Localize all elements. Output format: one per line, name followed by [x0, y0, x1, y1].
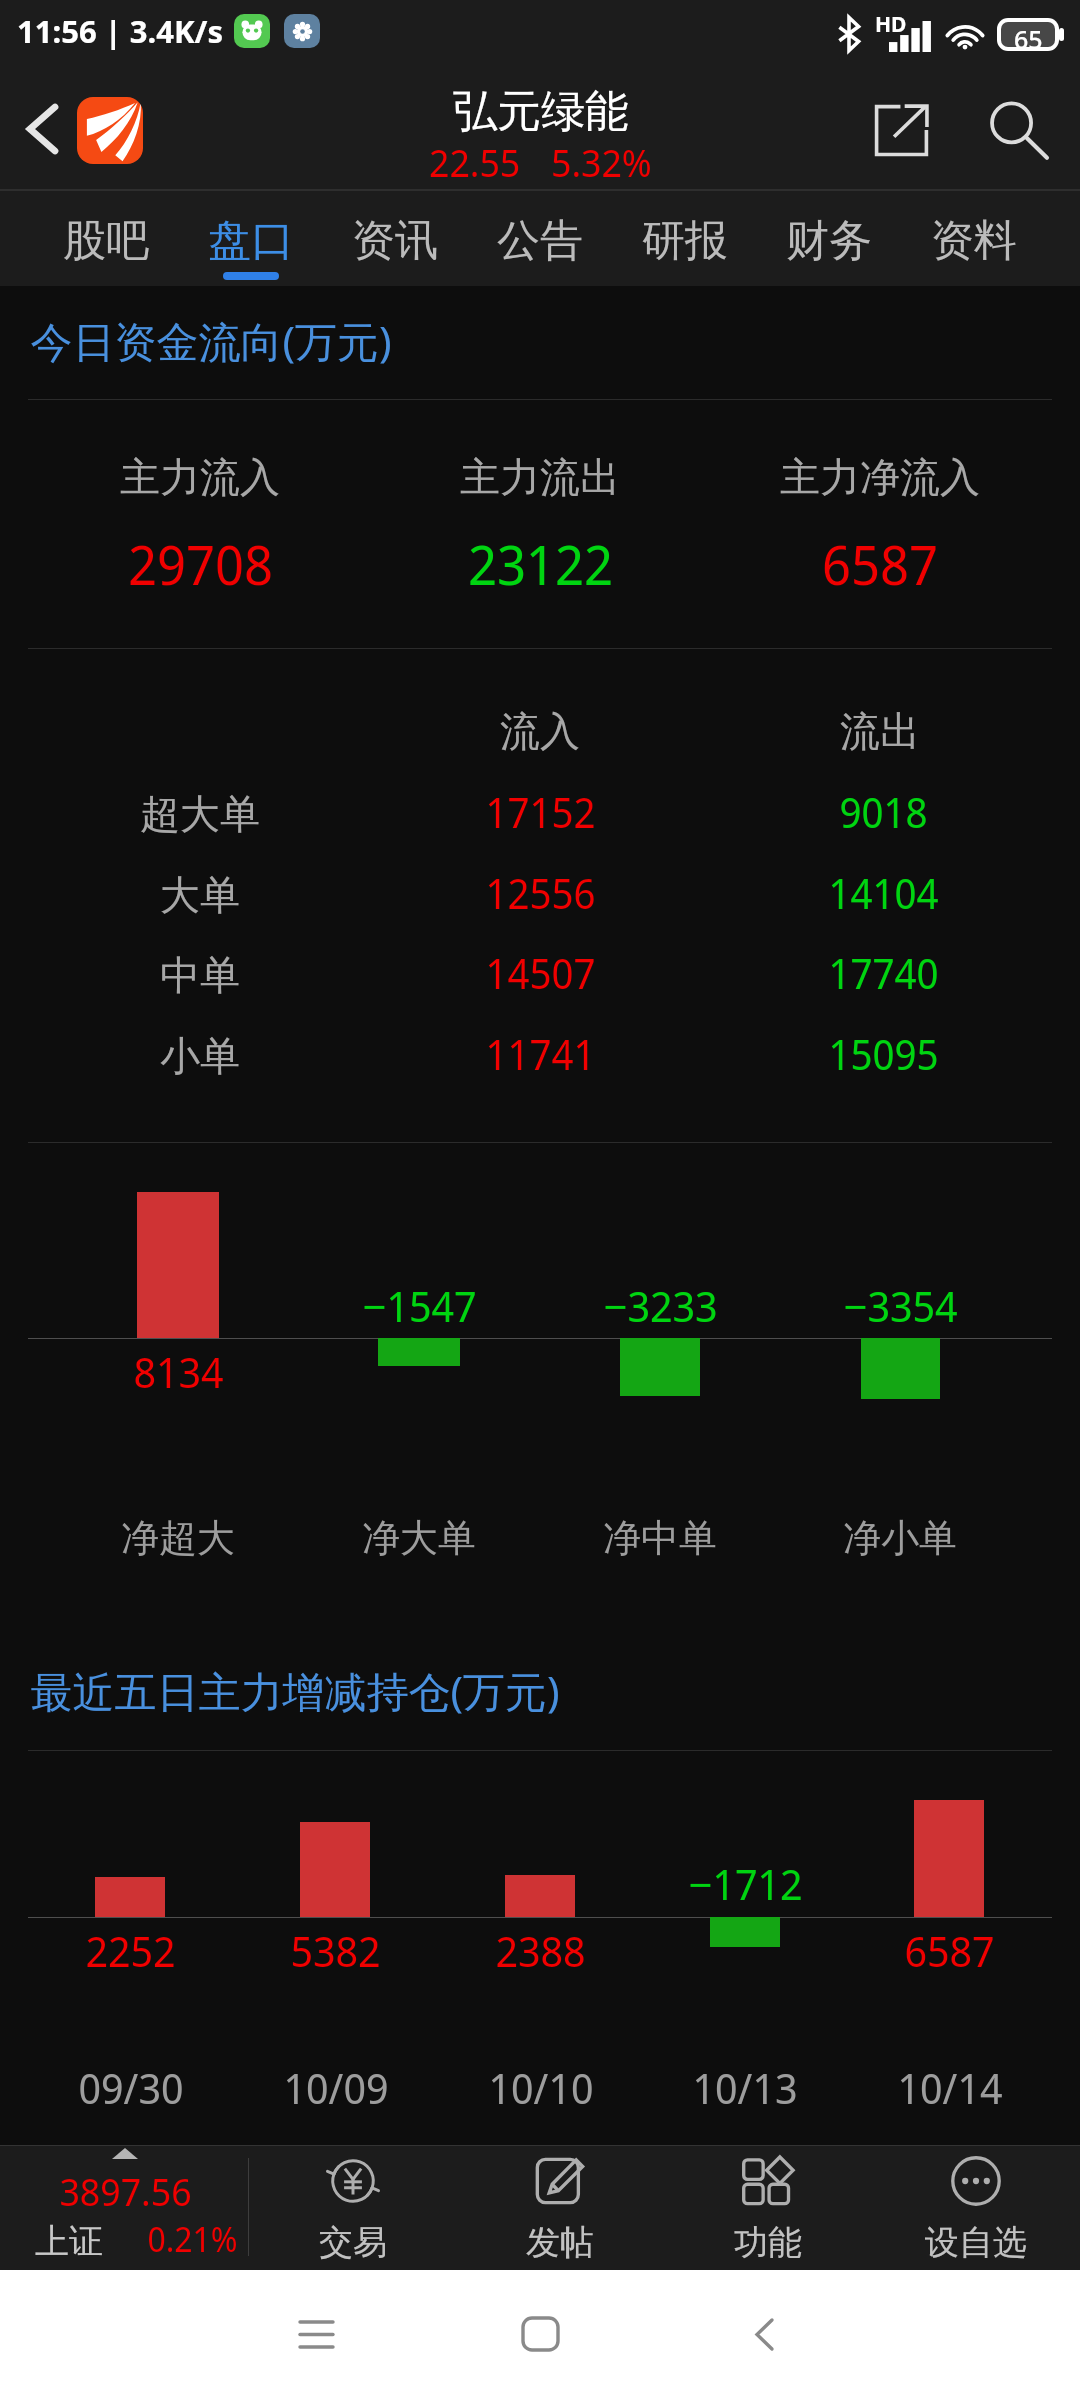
staticText: 17740 — [828, 945, 939, 1001]
staticText: −3233 — [603, 1277, 718, 1334]
staticText: 公告 — [497, 214, 583, 268]
staticText: 资料 — [931, 214, 1017, 268]
staticText: 超大单 — [140, 789, 260, 839]
staticText: 22.55 — [429, 136, 521, 188]
staticText: 12556 — [485, 865, 596, 921]
staticText: 流入 — [500, 706, 580, 756]
staticText: 大单 — [160, 870, 240, 920]
button[interactable]: 设自选 — [872, 2146, 1080, 2270]
button[interactable]: Recent apps — [271, 2289, 361, 2379]
staticText: 10/09 — [283, 2059, 389, 2116]
staticText: 09/30 — [78, 2059, 184, 2116]
staticText: 14507 — [485, 945, 596, 1001]
button[interactable]: Home — [495, 2289, 585, 2379]
button[interactable]: 发帖 — [456, 2146, 664, 2270]
staticText: 17152 — [485, 784, 596, 840]
staticText: 11:56 | 3.4K/s — [17, 10, 224, 52]
button[interactable]: 3897.56 — [0, 2146, 248, 2270]
staticText: 今日资金流向(万元) — [30, 312, 392, 369]
staticText: −3354 — [843, 1277, 958, 1334]
button[interactable]: 资讯 — [323, 192, 467, 288]
staticText: 2252 — [85, 1922, 176, 1979]
staticText: 弘元绿能 — [453, 84, 629, 139]
button[interactable]: 财务 — [757, 192, 901, 288]
staticText: 小单 — [160, 1031, 240, 1081]
staticText: 8134 — [133, 1343, 224, 1400]
button[interactable]: Back — [719, 2289, 809, 2379]
staticText: 净中单 — [603, 1514, 717, 1562]
button[interactable]: Share — [853, 82, 949, 178]
button[interactable]: 资料 — [902, 192, 1046, 288]
button[interactable]: Search — [971, 83, 1067, 179]
staticText: 发帖 — [526, 2221, 594, 2264]
staticText: 29708 — [128, 527, 273, 601]
staticText: 10/14 — [897, 2059, 1003, 2116]
staticText: 6587 — [904, 1922, 995, 1979]
staticText: 上证 — [35, 2220, 103, 2263]
staticText: 功能 — [734, 2221, 802, 2264]
staticText: 资讯 — [352, 214, 438, 268]
staticText: HD — [875, 10, 907, 39]
staticText: 盘口 — [208, 214, 294, 268]
staticText: 净超大 — [121, 1514, 235, 1562]
button[interactable]: 研报 — [613, 192, 757, 288]
staticText: 2388 — [495, 1922, 586, 1979]
staticText: −1712 — [688, 1855, 803, 1912]
staticText: 65 — [1014, 22, 1043, 47]
staticText: 主力净流入 — [780, 452, 980, 502]
staticText: 23122 — [468, 527, 613, 601]
button[interactable]: 功能 — [664, 2146, 872, 2270]
button[interactable]: 盘口 — [179, 192, 323, 288]
staticText: 3897.56 — [59, 2165, 192, 2217]
staticText: 15095 — [828, 1026, 939, 1082]
button[interactable]: 公告 — [468, 192, 612, 288]
staticText: 交易 — [319, 2221, 387, 2264]
button[interactable]: Eastmoney home — [77, 97, 143, 164]
staticText: 6587 — [822, 527, 938, 601]
staticText: 财务 — [786, 214, 872, 268]
staticText: 0.21% — [147, 2216, 238, 2262]
staticText: 5.32% — [551, 136, 652, 188]
button[interactable]: Back — [3, 90, 81, 168]
staticText: 9018 — [839, 784, 928, 840]
staticText: 中单 — [160, 950, 240, 1000]
staticText: 股吧 — [63, 214, 149, 268]
staticText: 10/10 — [488, 2059, 594, 2116]
staticText: 设自选 — [925, 2221, 1027, 2264]
button[interactable]: 股吧 — [34, 192, 178, 288]
staticText: 流出 — [840, 706, 920, 756]
staticText: 14104 — [828, 865, 939, 921]
button[interactable]: 交易 — [249, 2146, 457, 2270]
staticText: 研报 — [642, 214, 728, 268]
staticText: 最近五日主力增减持仓(万元) — [30, 1662, 560, 1719]
staticText: 5382 — [290, 1922, 381, 1979]
staticText: 10/13 — [692, 2059, 798, 2116]
staticText: 净小单 — [843, 1514, 957, 1562]
staticText: 主力流出 — [460, 452, 620, 502]
staticText: 净大单 — [362, 1514, 476, 1562]
staticText: 11741 — [485, 1026, 596, 1082]
staticText: 主力流入 — [120, 452, 280, 502]
staticText: −1547 — [362, 1277, 477, 1334]
